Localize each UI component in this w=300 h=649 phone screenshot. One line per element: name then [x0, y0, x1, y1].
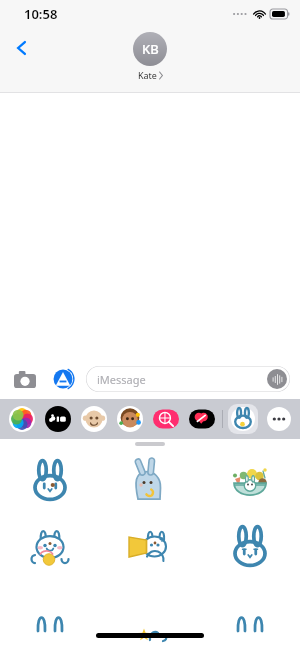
staticText: iMessage [97, 372, 146, 387]
button[interactable]: Audio message [267, 369, 287, 389]
button[interactable]: Back [4, 30, 40, 66]
staticText: 10:58 [24, 5, 58, 23]
button[interactable]: KB [133, 32, 167, 81]
staticText: KB [142, 40, 159, 58]
button[interactable]: Camera [10, 364, 40, 394]
button[interactable]: Images [151, 404, 181, 434]
button[interactable]: Sticker 3 [200, 451, 300, 513]
button[interactable]: Sticker 1 [0, 451, 100, 513]
button[interactable]: Memoji 2 [115, 404, 145, 434]
button[interactable]: Music [187, 404, 217, 434]
staticText: Kate [138, 69, 157, 81]
button[interactable]: Sticker 7 [0, 583, 100, 645]
button[interactable]: Sticker 4 [0, 517, 100, 579]
button[interactable]: Sticker 6 [200, 517, 300, 579]
button[interactable]: Apple Pay [43, 404, 73, 434]
button[interactable]: Sticker 9 [200, 583, 300, 645]
button[interactable]: Memoji [79, 404, 109, 434]
button[interactable]: Photos [7, 404, 37, 434]
button[interactable]: Sticker 2 [100, 451, 200, 513]
button[interactable]: Sticker 8 [100, 583, 200, 645]
button[interactable]: Sticker 5 [100, 517, 200, 579]
button[interactable]: Apps [48, 364, 78, 394]
button[interactable]: Stickers [228, 404, 258, 434]
button[interactable]: iMessage [86, 366, 290, 392]
button[interactable]: More [264, 404, 293, 434]
